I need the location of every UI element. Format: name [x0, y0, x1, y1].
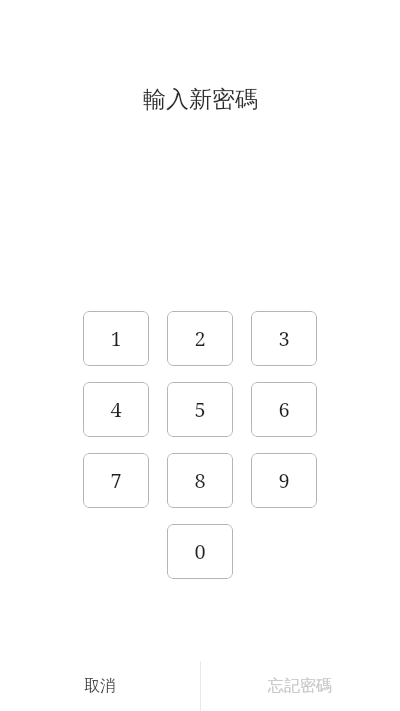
staticText: 輸入新密碼 [143, 85, 258, 114]
staticText: 0 [194, 538, 206, 565]
staticText: 1 [110, 325, 122, 352]
button[interactable]: 9 [251, 453, 317, 508]
button[interactable]: 忘記密碼 [200, 661, 400, 711]
button[interactable]: 5 [167, 382, 233, 437]
staticText: 4 [110, 396, 122, 423]
staticText: 忘記密碼 [268, 676, 332, 696]
staticText: 5 [194, 396, 206, 423]
button[interactable]: 6 [251, 382, 317, 437]
button[interactable]: 取消 [0, 661, 200, 711]
staticText: 7 [110, 467, 122, 494]
staticText: 6 [278, 396, 290, 423]
staticText: 取消 [84, 676, 116, 696]
staticText: 2 [194, 325, 206, 352]
button[interactable]: 2 [167, 311, 233, 366]
button[interactable]: 1 [83, 311, 149, 366]
button[interactable]: 7 [83, 453, 149, 508]
staticText: 3 [278, 325, 290, 352]
button[interactable]: 3 [251, 311, 317, 366]
staticText: 9 [278, 467, 290, 494]
button[interactable]: 0 [167, 524, 233, 579]
button[interactable]: 4 [83, 382, 149, 437]
staticText: 8 [194, 467, 206, 494]
button[interactable]: 8 [167, 453, 233, 508]
